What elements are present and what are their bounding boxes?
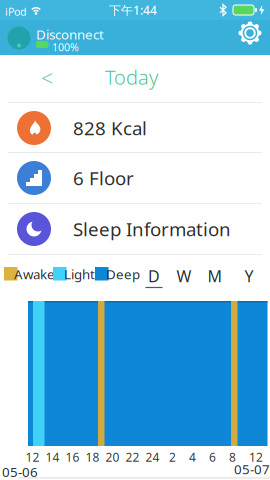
button[interactable]: 828 Kcal <box>0 103 270 153</box>
staticText: Disconnect <box>36 25 104 43</box>
staticText: iPod <box>5 4 27 19</box>
staticText: 14 <box>45 449 59 465</box>
staticText: 22 <box>125 449 139 465</box>
button[interactable]: Settings <box>233 16 267 50</box>
staticText: Awake <box>14 265 55 283</box>
staticText: 8 <box>229 449 236 465</box>
button[interactable]: Y <box>237 262 261 292</box>
staticText: 12 <box>25 449 39 465</box>
staticText: 20 <box>105 449 119 465</box>
staticText: 100% <box>52 40 79 54</box>
staticText: 828 Kcal <box>73 116 147 140</box>
staticText: 6 Floor <box>73 166 134 190</box>
staticText: 2 <box>169 449 176 465</box>
button[interactable]: Disconnect <box>0 20 110 55</box>
staticText: 下午1:44 <box>109 2 157 18</box>
staticText: 24 <box>145 449 159 465</box>
staticText: D <box>148 265 160 287</box>
staticText: 18 <box>85 449 99 465</box>
staticText: 6 <box>209 449 216 465</box>
staticText: < <box>41 64 53 92</box>
staticText: M <box>207 265 222 287</box>
staticText: Sleep Information <box>73 217 231 241</box>
staticText: 12 <box>249 449 263 465</box>
staticText: Y <box>244 265 253 287</box>
button[interactable]: 6 Floor <box>0 153 270 203</box>
staticText: Deep <box>106 265 140 283</box>
button[interactable]: Sleep Information <box>0 204 270 254</box>
staticText: 05-06 <box>2 463 38 480</box>
button[interactable]: D <box>142 262 166 292</box>
staticText: Light <box>64 265 95 283</box>
button[interactable]: W <box>172 262 196 292</box>
staticText: 4 <box>189 449 196 465</box>
staticText: Today <box>105 64 158 90</box>
staticText: W <box>176 265 191 287</box>
staticText: 05-07 <box>234 460 270 478</box>
staticText: 16 <box>65 449 79 465</box>
button[interactable]: M <box>203 262 227 292</box>
button[interactable]: Back <box>32 65 62 91</box>
